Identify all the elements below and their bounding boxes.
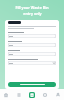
button[interactable]: Add waste entry — [27, 89, 37, 100]
button[interactable] — [8, 52, 56, 56]
button[interactable] — [8, 21, 21, 24]
button[interactable] — [8, 61, 56, 65]
button[interactable]: History — [14, 89, 24, 100]
button[interactable] — [8, 43, 56, 47]
button[interactable]: Profile — [53, 89, 63, 100]
staticText: entry only — [23, 11, 42, 16]
button[interactable] — [8, 34, 56, 38]
staticText: Fill your Waste Bin — [15, 5, 49, 10]
button[interactable] — [8, 82, 56, 87]
button[interactable]: Home — [1, 89, 11, 100]
button[interactable]: Rewards — [40, 89, 50, 100]
